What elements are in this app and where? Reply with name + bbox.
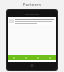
button[interactable]: Home	[8, 55, 20, 60]
staticText: Partners	[0, 2, 64, 7]
button[interactable]: Profile	[44, 55, 56, 60]
button[interactable]	[8, 18, 56, 25]
button[interactable]: Favorites	[32, 55, 44, 60]
button[interactable]: Search	[20, 55, 32, 60]
